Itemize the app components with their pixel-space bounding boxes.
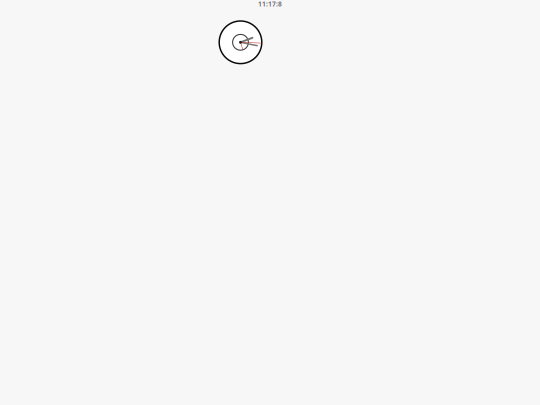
staticText: 11:17:8 <box>258 0 282 9</box>
